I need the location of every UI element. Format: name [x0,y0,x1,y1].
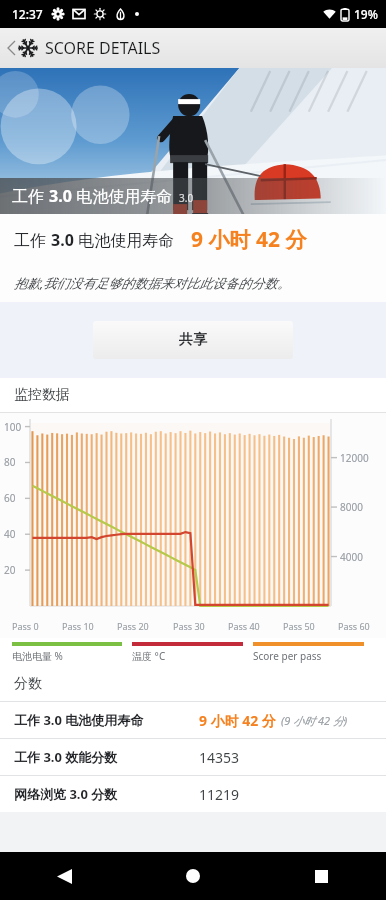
button[interactable]: Back [0,852,128,900]
staticText: Pass 50 [283,620,315,632]
staticText: 20 [4,563,16,577]
staticText: 14353 [199,748,240,767]
staticText: 80 [4,455,16,469]
staticText: 3.0 [49,185,72,207]
staticText: Pass 60 [338,620,370,632]
staticText: 60 [4,491,16,505]
staticText: 监控数据 [14,386,70,404]
staticText: 40 [4,527,16,541]
staticText: 电池使用寿命 [72,185,173,207]
button[interactable]: 工作 3.0 效能分数 [0,739,386,775]
staticText: 12:37 [12,6,43,22]
staticText: 抱歉,我们没有足够的数据来对比此设备的分数。 [14,274,291,292]
staticText: 8000 [340,500,363,514]
staticText: 19% [354,6,378,22]
staticText: Pass 40 [228,620,260,632]
staticText: 电池电量 % [12,649,63,663]
staticText: 4000 [340,550,363,564]
staticText: 电池使用寿命 [74,229,175,251]
staticText: 9 小时 42 分 [199,711,276,730]
button[interactable]: Recent apps [257,852,386,900]
staticText: SCORE DETAILS [45,37,161,59]
staticText: Pass 10 [62,620,94,632]
staticText: Pass 0 [12,620,39,632]
staticText: 工作 3.0 效能分数 [14,748,199,766]
staticText: Pass 20 [117,620,149,632]
button[interactable]: 工作 3.0 电池使用寿命 [0,702,386,738]
button[interactable]: Back to Score Details [4,37,165,59]
staticText: 100 [4,420,22,434]
staticText: 共享 [179,331,207,349]
staticText: 3.0 [179,191,194,205]
staticText: 工作 [14,229,51,251]
staticText: 11219 [199,785,240,804]
staticText: Pass 30 [173,620,205,632]
staticText: 9 小时 42 分 [191,225,307,254]
staticText: 网络浏览 3.0 分数 [14,785,199,803]
staticText: 工作 3.0 电池使用寿命 [14,711,199,729]
staticText: 3.0 [51,229,74,251]
staticText: 分数 [14,675,42,693]
staticText: 工作 [12,185,49,207]
staticText: 温度 °C [132,649,166,663]
button[interactable]: 共享 [93,321,293,359]
button[interactable]: Home [128,852,257,900]
button[interactable]: 网络浏览 3.0 分数 [0,776,386,812]
staticText: 12000 [340,451,369,465]
staticText: Score per pass [253,649,322,663]
staticText: (9 小时 42 分) [281,713,348,728]
